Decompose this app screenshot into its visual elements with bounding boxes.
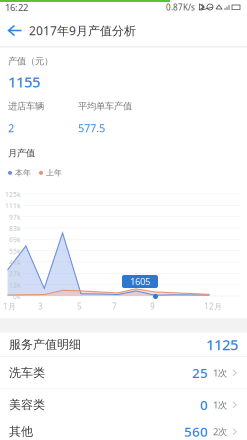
staticText: 产值（元） bbox=[8, 55, 53, 67]
staticText: 2 bbox=[8, 121, 14, 135]
staticText: 0k bbox=[13, 292, 21, 301]
button[interactable]: 美容类 bbox=[0, 389, 247, 421]
staticText: 12月 bbox=[204, 301, 222, 312]
staticText: 0 bbox=[200, 396, 208, 414]
staticText: 美容类 bbox=[9, 397, 45, 412]
staticText: 7 bbox=[112, 301, 117, 312]
staticText: 125k bbox=[5, 190, 21, 199]
staticText: 55k bbox=[9, 247, 21, 256]
staticText: 97k bbox=[9, 213, 21, 222]
staticText: 1次 bbox=[213, 399, 227, 411]
staticText: 560 bbox=[184, 423, 208, 440]
staticText: 其他 bbox=[9, 424, 33, 439]
staticText: 本年 bbox=[15, 168, 31, 178]
staticText: 5 bbox=[77, 301, 82, 312]
button[interactable]: 其他 bbox=[0, 416, 247, 440]
staticText: 1155 bbox=[8, 72, 40, 91]
staticText: 1605 bbox=[130, 275, 150, 288]
staticText: 2017年9月产值分析 bbox=[29, 22, 136, 38]
staticText: 25 bbox=[192, 364, 208, 382]
staticText: 577.5 bbox=[78, 121, 105, 135]
staticText: 83k bbox=[9, 224, 21, 233]
staticText: 0.87K/s bbox=[166, 2, 195, 13]
staticText: 1次 bbox=[213, 367, 227, 379]
staticText: 27k bbox=[9, 269, 21, 278]
staticText: 1月 bbox=[3, 301, 16, 312]
button[interactable]: 洗车类 bbox=[0, 357, 247, 389]
staticText: 3 bbox=[38, 301, 43, 312]
staticText: 2次 bbox=[213, 425, 227, 438]
staticText: 洗车类 bbox=[9, 365, 45, 380]
staticText: 月产值 bbox=[8, 147, 35, 159]
staticText: 1125 bbox=[206, 335, 238, 354]
staticText: 13k bbox=[9, 281, 21, 290]
staticText: 69k bbox=[9, 235, 21, 244]
staticText: 上年 bbox=[46, 168, 62, 178]
staticText: 111k bbox=[5, 201, 21, 210]
staticText: 16:22 bbox=[5, 1, 28, 14]
staticText: 服务产值明细 bbox=[9, 337, 81, 352]
staticText: 41k bbox=[9, 258, 21, 267]
button[interactable]: Back bbox=[0, 23, 29, 38]
staticText: 进店车辆 bbox=[8, 100, 44, 112]
staticText: 9 bbox=[150, 301, 155, 312]
staticText: 平均单车产值 bbox=[78, 100, 132, 112]
